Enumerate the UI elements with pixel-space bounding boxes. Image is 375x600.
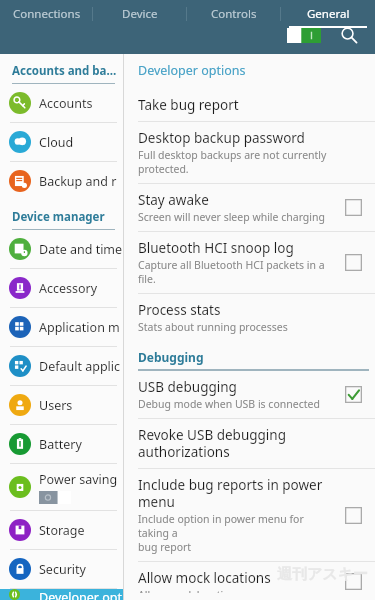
button[interactable]: Default applic (0, 347, 123, 385)
staticText: Storage (39, 522, 85, 539)
button[interactable]: Security (0, 550, 123, 588)
staticText: Accessory (39, 280, 98, 297)
button[interactable]: Date and time (0, 230, 123, 268)
staticText: Default applic (39, 358, 121, 375)
staticText: Desktop backup password (138, 129, 305, 147)
staticText: Battery (39, 436, 82, 453)
button[interactable]: General (281, 0, 375, 28)
staticText: Cloud (39, 134, 74, 151)
staticText: Controls (211, 6, 257, 22)
button[interactable]: Desktop backup password (124, 122, 375, 183)
button[interactable]: Backup and r (0, 162, 123, 200)
button[interactable]: Process stats (124, 294, 375, 341)
button[interactable]: Connections (0, 0, 93, 28)
staticText: Capture all Bluetooth HCI packets in a f… (138, 258, 337, 286)
button[interactable]: Revoke USB debugging authorizations (124, 419, 375, 468)
staticText: Developer opt (39, 589, 123, 600)
button[interactable]: Stay awake (124, 184, 375, 231)
staticText: Connections (13, 6, 81, 22)
button[interactable]: Accessory (0, 269, 123, 307)
staticText: Revoke USB debugging authorizations (138, 426, 365, 461)
staticText: 週刊アスキー (277, 565, 369, 584)
staticText: Take bug report (138, 96, 239, 114)
staticText: Users (39, 397, 73, 414)
staticText: Developer options (138, 62, 246, 79)
staticText: Allow mock locations (138, 588, 242, 593)
button[interactable]: Developer opt (0, 589, 123, 600)
staticText: Full desktop backups are not currently p… (138, 148, 327, 176)
button[interactable]: Take bug report (124, 89, 375, 121)
button[interactable]: Include bug reports in power menu (124, 469, 375, 561)
staticText: General (307, 6, 350, 22)
button[interactable]: Application m (0, 308, 123, 346)
staticText: Screen will never sleep while charging (138, 210, 325, 224)
staticText: Include option in power menu for taking … (138, 512, 337, 554)
button[interactable]: USB debugging (124, 371, 375, 418)
staticText: Security (39, 561, 86, 578)
button[interactable]: Bluetooth HCI snoop log (124, 232, 375, 293)
staticText: Allow mock locations (138, 569, 271, 587)
button[interactable]: Battery (0, 425, 123, 463)
button[interactable]: Accounts (0, 84, 123, 122)
button[interactable]: Users (0, 386, 123, 424)
button[interactable]: Device (93, 0, 187, 28)
staticText: Power saving (39, 471, 118, 488)
staticText: Accounts (39, 95, 93, 112)
staticText: Accounts and ba… (12, 63, 117, 79)
staticText: USB debugging (138, 378, 237, 396)
staticText: Debugging (138, 349, 204, 365)
button[interactable]: Search (337, 23, 361, 47)
staticText: Process stats (138, 301, 221, 319)
button[interactable]: Cloud (0, 123, 123, 161)
staticText: Stats about running processes (138, 320, 288, 334)
staticText: Application m (39, 319, 120, 336)
button[interactable]: Controls (187, 0, 281, 28)
staticText: Include bug reports in power menu (138, 476, 337, 511)
button[interactable]: Storage (0, 511, 123, 549)
staticText: Backup and r (39, 173, 117, 190)
other: Search (340, 26, 358, 44)
button[interactable]: Power saving (0, 464, 123, 510)
staticText: Stay awake (138, 191, 209, 209)
staticText: Device (122, 6, 158, 22)
staticText: Bluetooth HCI snoop log (138, 239, 294, 257)
button[interactable]: Developer options on/off (283, 24, 325, 47)
staticText: Device manager (12, 209, 105, 225)
staticText: Date and time (39, 241, 123, 258)
staticText: Debug mode when USB is connected (138, 397, 320, 411)
button[interactable]: Allow mock locations (124, 562, 375, 600)
